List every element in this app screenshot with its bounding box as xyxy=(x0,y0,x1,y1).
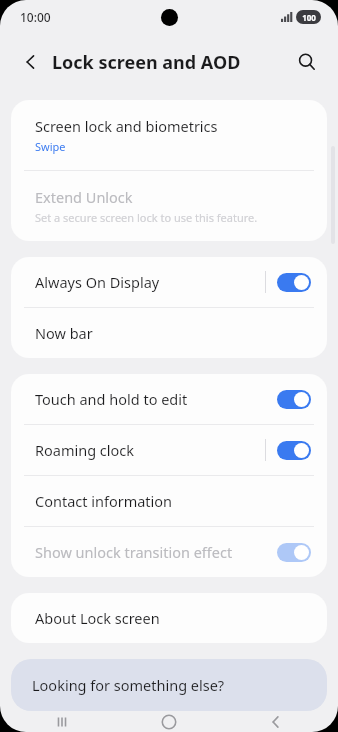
staticText: Now bar xyxy=(35,323,93,343)
button[interactable]: Back xyxy=(14,45,48,79)
button[interactable]: Back xyxy=(231,711,321,732)
staticText: Extend Unlock xyxy=(35,187,133,207)
staticText: Lock screen and AOD xyxy=(52,50,241,75)
staticText: Roaming clock xyxy=(35,440,265,460)
staticText: Touch and hold to edit xyxy=(35,389,277,409)
button[interactable]: Search xyxy=(290,45,324,79)
staticText: Screen lock and biometrics xyxy=(35,116,218,136)
button[interactable]: Extend Unlock xyxy=(11,171,327,241)
button[interactable]: Touch and hold to edit xyxy=(11,374,327,424)
staticText: About Lock screen xyxy=(35,608,160,628)
button[interactable]: Looking for something else? xyxy=(11,659,327,711)
button[interactable]: Toggle xyxy=(277,390,311,409)
staticText: Always On Display xyxy=(35,272,265,292)
button[interactable]: Recents xyxy=(17,711,107,732)
button[interactable]: About Lock screen xyxy=(11,593,327,643)
button[interactable]: Home xyxy=(124,711,214,732)
button[interactable]: Contact information xyxy=(11,476,327,526)
button[interactable]: Toggle xyxy=(277,543,311,562)
staticText: Swipe xyxy=(35,139,66,154)
button[interactable]: Always On Display xyxy=(11,257,327,307)
button[interactable]: Roaming clock xyxy=(11,425,327,475)
button[interactable]: Now bar xyxy=(11,308,327,358)
staticText: Looking for something else? xyxy=(32,675,225,695)
button[interactable]: Screen lock and biometrics xyxy=(11,100,327,170)
staticText: 100 xyxy=(302,12,316,23)
button[interactable]: Toggle xyxy=(277,441,311,460)
staticText: Show unlock transition effect xyxy=(35,542,277,562)
staticText: 10:00 xyxy=(20,9,51,25)
staticText: Contact information xyxy=(35,491,173,511)
button[interactable]: Toggle xyxy=(277,273,311,292)
staticText: Set a secure screen lock to use this fea… xyxy=(35,210,258,225)
button[interactable]: Show unlock transition effect xyxy=(11,527,327,577)
